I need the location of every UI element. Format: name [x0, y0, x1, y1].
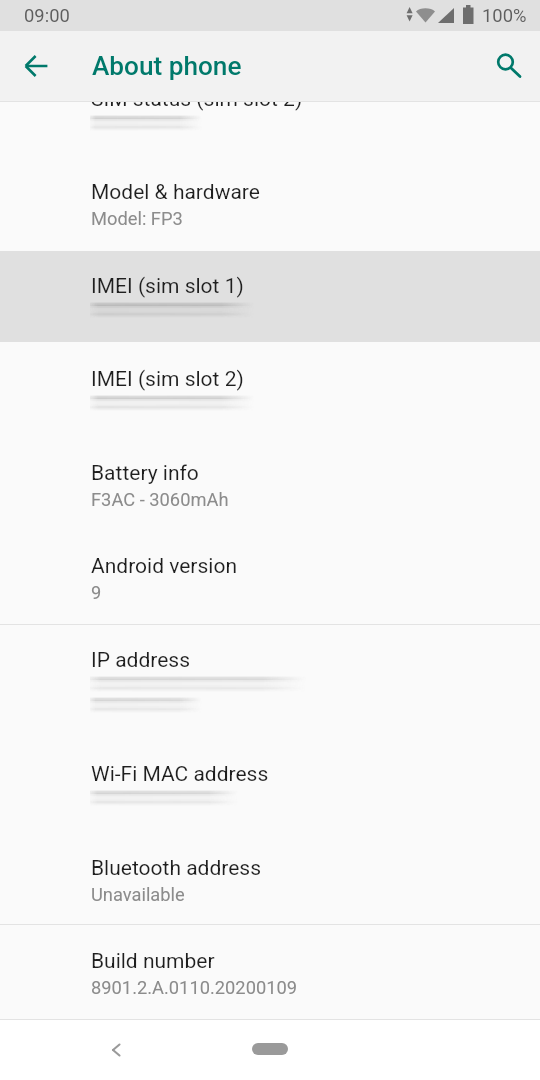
button[interactable]: Model & hardware: [0, 153, 540, 251]
button[interactable]: Back: [92, 1026, 140, 1074]
staticText: IP address: [91, 648, 191, 673]
button[interactable]: IP address: [0, 625, 540, 739]
button[interactable]: Home: [246, 1037, 294, 1061]
button[interactable]: Wi-Fi MAC address: [0, 739, 540, 833]
staticText: SIM status (sim slot 2): [91, 102, 303, 112]
staticText: Bluetooth address: [91, 856, 262, 881]
staticText: About phone: [92, 51, 242, 82]
staticText: Wi-Fi MAC address: [91, 762, 269, 787]
staticText: 09:00: [24, 5, 70, 27]
button[interactable]: Build number: [0, 925, 540, 1019]
button[interactable]: Navigate up: [8, 38, 64, 94]
staticText: Model: FP3: [91, 208, 183, 229]
staticText: 9: [91, 582, 102, 603]
button[interactable]: SIM status (sim slot 2): [0, 102, 540, 153]
button[interactable]: IMEI (sim slot 1): [0, 251, 540, 342]
button[interactable]: Battery info: [0, 437, 540, 530]
staticText: Battery info: [91, 461, 199, 486]
staticText: F3AC - 3060mAh: [91, 489, 229, 510]
staticText: IMEI (sim slot 1): [91, 274, 244, 299]
staticText: Android version: [91, 554, 237, 579]
button[interactable]: Search settings: [478, 38, 534, 94]
staticText: Build number: [91, 949, 215, 974]
staticText: IMEI (sim slot 2): [91, 367, 244, 392]
button[interactable]: IMEI (sim slot 2): [0, 342, 540, 437]
staticText: 100%: [482, 5, 527, 27]
staticText: 8901.2.A.0110.20200109: [91, 977, 298, 998]
staticText: Unavailable: [91, 884, 185, 905]
button[interactable]: Bluetooth address: [0, 833, 540, 924]
button[interactable]: Android version: [0, 530, 540, 624]
staticText: Model & hardware: [91, 180, 260, 205]
